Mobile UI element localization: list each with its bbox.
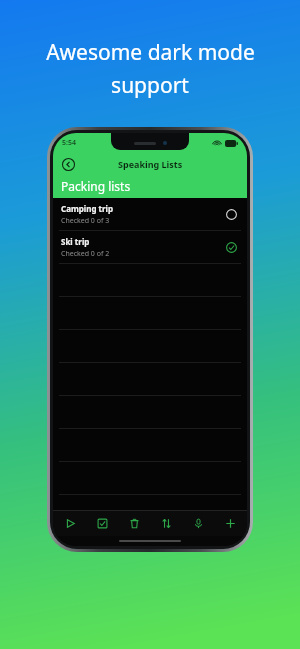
staticText: Speaking Lists	[118, 158, 183, 170]
button[interactable]: Voice input	[187, 512, 209, 534]
staticText: support	[111, 71, 189, 100]
button[interactable]: Add	[219, 512, 241, 534]
button[interactable]: Check all	[91, 512, 113, 534]
button[interactable]: Back	[59, 155, 77, 173]
staticText: Awesome dark mode	[46, 38, 255, 67]
button[interactable]: Sort	[155, 512, 177, 534]
staticText: Camping trip	[61, 203, 114, 214]
button[interactable]: Ski trip	[53, 231, 247, 264]
staticText: Ski trip	[61, 236, 90, 247]
staticText: Checked 0 of 2	[61, 249, 110, 259]
button[interactable]: Play	[59, 512, 81, 534]
staticText: Checked 0 of 3	[61, 216, 110, 226]
staticText: 5:54	[62, 138, 76, 148]
staticText: Packing lists	[61, 178, 131, 194]
button[interactable]: Delete	[123, 512, 145, 534]
button[interactable]: Camping trip	[53, 198, 247, 231]
